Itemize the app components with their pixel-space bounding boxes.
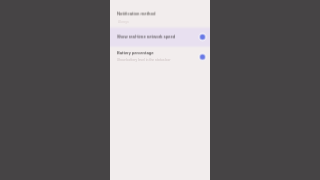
staticText: Battery percentage (117, 51, 154, 56)
staticText: Always (118, 20, 129, 24)
staticText: Notification method (117, 12, 156, 17)
staticText: Show real-time network speed (117, 35, 176, 40)
staticText: Notification method (117, 10, 156, 15)
staticText: Show real-time network speed (117, 33, 176, 38)
staticText: Show battery level in the status bar (117, 58, 171, 62)
button[interactable]: Show real-time network speed (110, 26, 210, 48)
staticText: Battery percentage (117, 50, 154, 55)
button[interactable]: Battery percentage (110, 48, 210, 68)
button[interactable]: Show real-time network speed (197, 31, 208, 42)
staticText: Show real-time network speed (117, 34, 176, 39)
staticText: Battery percentage (117, 50, 154, 55)
button[interactable]: Battery percentage (197, 51, 208, 62)
staticText: Notification method (117, 11, 156, 16)
